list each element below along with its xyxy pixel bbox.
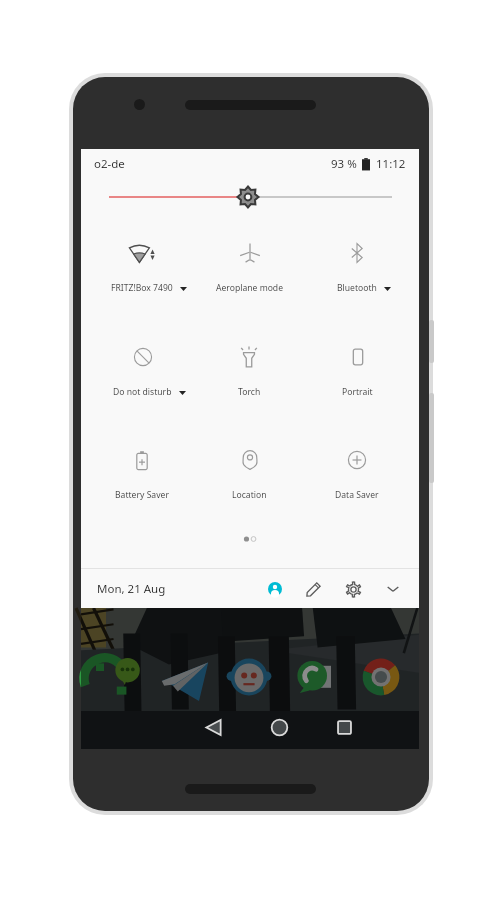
staticText: Location xyxy=(232,489,267,501)
button[interactable]: Edit xyxy=(300,576,326,602)
button[interactable]: Recents xyxy=(330,713,358,741)
button[interactable]: Battery Saver xyxy=(88,433,196,519)
button[interactable]: Torch xyxy=(195,330,303,416)
button[interactable]: App 2 xyxy=(161,657,201,697)
button[interactable]: App 5 xyxy=(361,657,401,697)
button[interactable]: Data Saver xyxy=(303,433,411,519)
staticText: Torch xyxy=(238,386,261,398)
staticText: Mon, 21 Aug xyxy=(97,581,166,597)
button[interactable]: Location xyxy=(195,433,303,519)
button[interactable]: App 1 xyxy=(96,657,136,697)
button[interactable]: Collapse xyxy=(380,576,406,602)
staticText: Aeroplane mode xyxy=(216,282,283,294)
staticText: Battery Saver xyxy=(115,489,169,501)
button[interactable]: Portrait xyxy=(303,330,411,416)
button[interactable]: Aeroplane mode xyxy=(195,226,303,312)
staticText: FRITZ!Box 7490 xyxy=(111,282,173,294)
button[interactable]: FRITZ!Box 7490 xyxy=(88,226,196,312)
button[interactable]: Do not disturb xyxy=(88,330,196,416)
staticText: Portrait xyxy=(342,386,373,398)
button[interactable]: App 4 xyxy=(295,657,335,697)
staticText: 93 % xyxy=(331,156,357,172)
button[interactable]: Bluetooth xyxy=(303,226,411,312)
button[interactable]: Settings xyxy=(340,576,366,602)
button[interactable]: Back xyxy=(199,713,227,741)
staticText: 11:12 xyxy=(376,156,406,172)
button[interactable]: App 3 xyxy=(229,657,269,697)
staticText: Data Saver xyxy=(335,489,379,501)
staticText: Bluetooth xyxy=(337,282,377,294)
staticText: Do not disturb xyxy=(113,386,172,398)
button[interactable]: User account xyxy=(262,576,288,602)
button[interactable]: Home xyxy=(265,713,293,741)
staticText: o2-de xyxy=(94,156,125,172)
